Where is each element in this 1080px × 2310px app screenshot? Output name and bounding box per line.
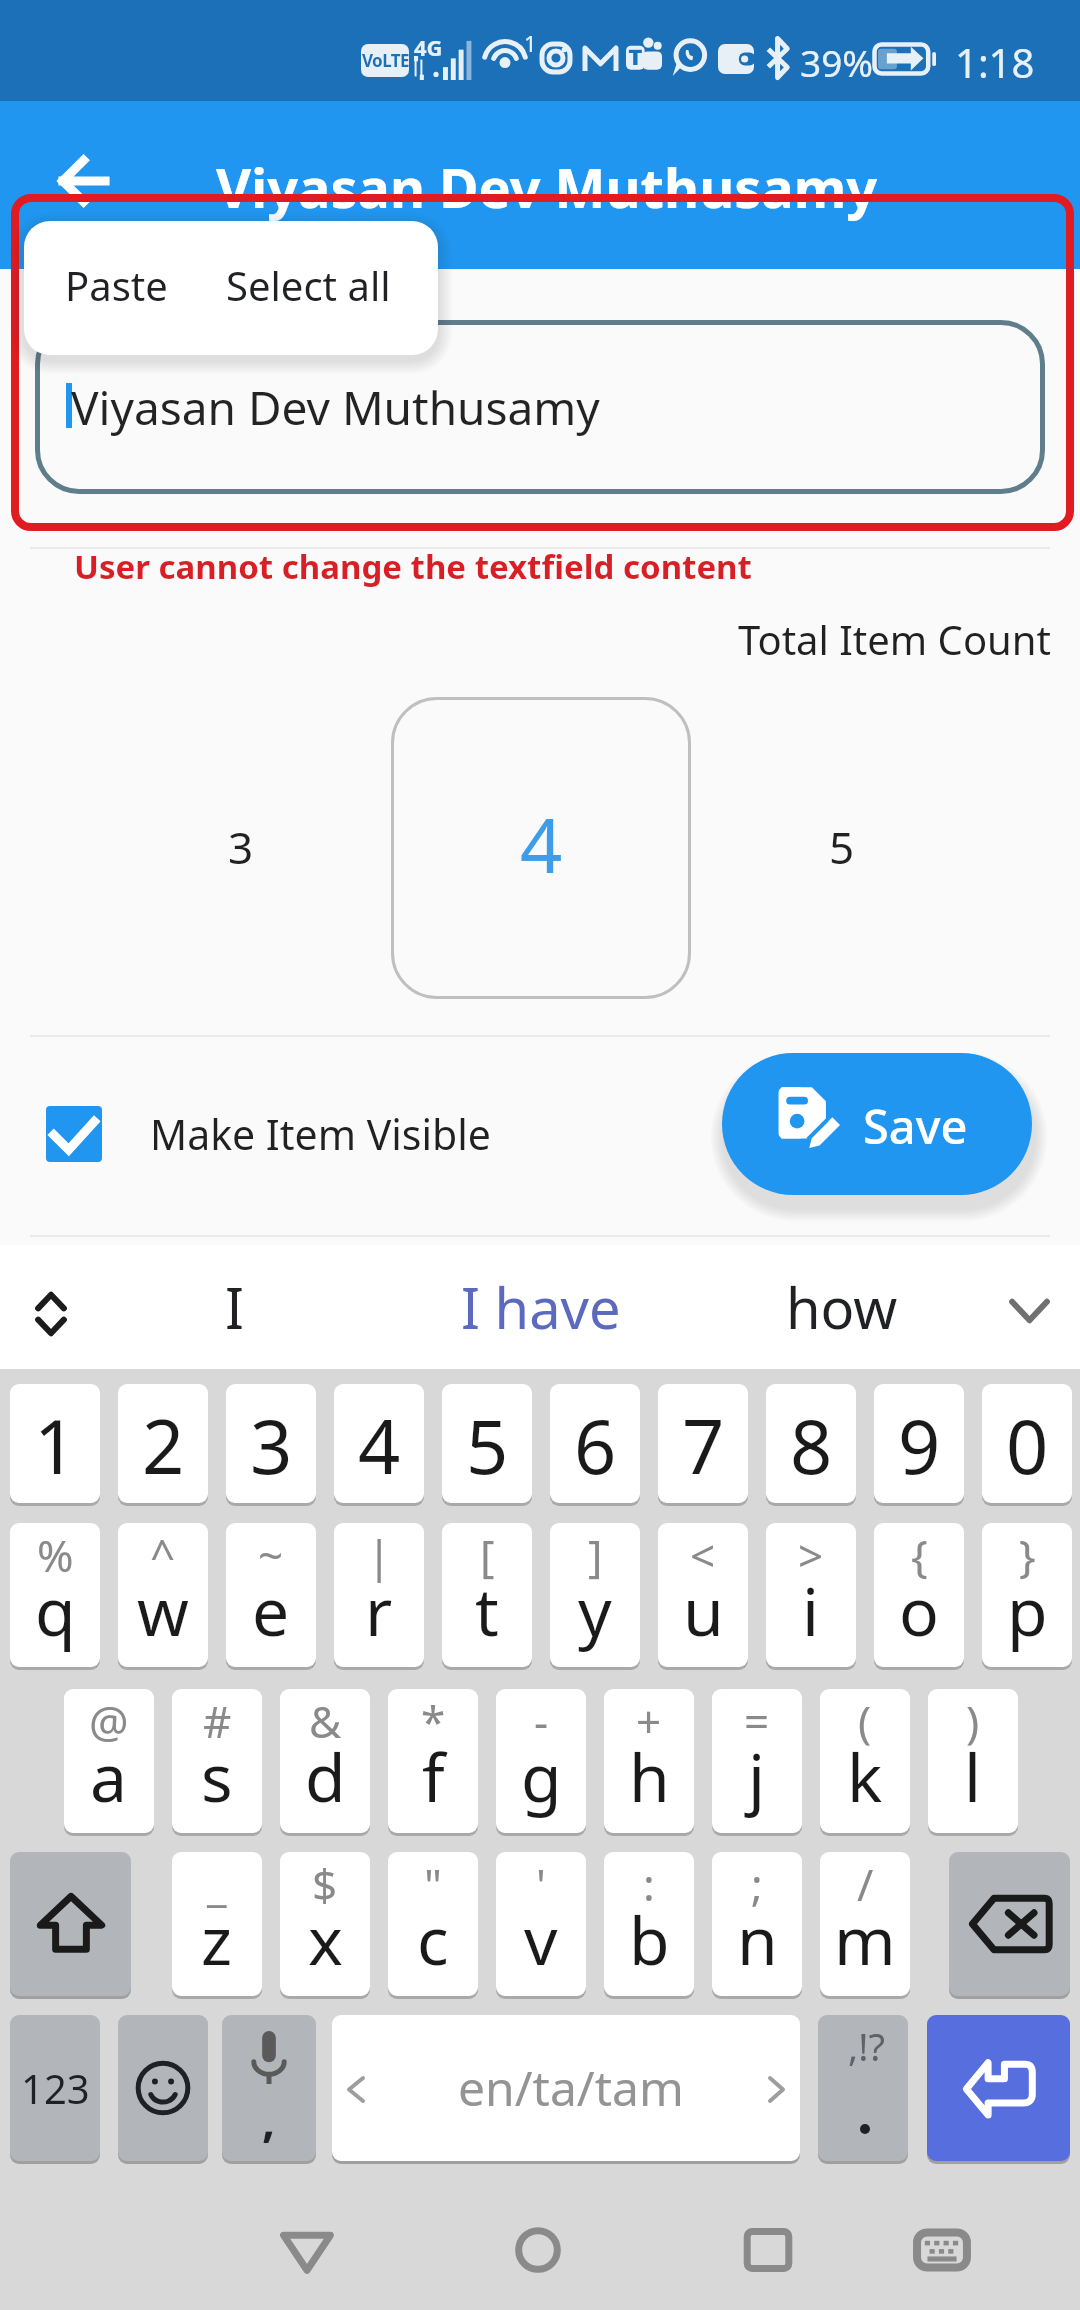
button[interactable]: / (820, 1852, 910, 1996)
button[interactable]: 2 (118, 1384, 208, 1503)
button[interactable]: Voice input (222, 2015, 316, 2161)
staticText: Total Item Count (738, 612, 1051, 666)
button[interactable]: ' (496, 1852, 586, 1996)
button[interactable]: ^ (118, 1523, 208, 1667)
staticText: " (424, 1854, 442, 1914)
staticText: Paste (65, 258, 168, 312)
button[interactable]: 0 (982, 1384, 1072, 1503)
button[interactable]: Select all (203, 221, 414, 355)
button[interactable]: $ (280, 1852, 370, 1996)
button[interactable]: 5 (442, 1384, 532, 1503)
staticText: w (137, 1565, 189, 1655)
staticText: ( (858, 1691, 872, 1751)
button[interactable]: Expand suggestions (26, 1289, 76, 1339)
staticText: I have (461, 1269, 621, 1345)
button[interactable]: 8 (766, 1384, 856, 1503)
staticText: _ (207, 1854, 227, 1914)
staticText: Make Item Visible (150, 1106, 491, 1162)
button[interactable]: 3 (226, 1384, 316, 1503)
staticText: r (365, 1565, 393, 1655)
staticText: ~ (258, 1525, 284, 1585)
button[interactable]: = (712, 1689, 802, 1833)
button[interactable]: Hide suggestions (1004, 1286, 1054, 1336)
button[interactable]: _ (172, 1852, 262, 1996)
button[interactable]: Paste (45, 221, 188, 355)
button[interactable]: Recents (742, 2227, 794, 2273)
staticText: User cannot change the textfield content (74, 544, 752, 589)
button[interactable]: | (334, 1523, 424, 1667)
button[interactable]: 123 (10, 2015, 100, 2161)
staticText: en/ta/tam (458, 2055, 684, 2120)
staticText: # (203, 1691, 232, 1751)
staticText: 2 (142, 1395, 185, 1496)
button[interactable]: Backspace (949, 1852, 1070, 1996)
staticText: b (629, 1894, 670, 1984)
button[interactable]: Emoji (118, 2015, 208, 2161)
staticText: 0 (1006, 1395, 1049, 1496)
staticText: d (305, 1731, 346, 1821)
button[interactable]: Back (62, 159, 106, 203)
button[interactable]: Hide keyboard (916, 2227, 968, 2273)
button[interactable]: ) (928, 1689, 1018, 1833)
staticText: u (683, 1565, 724, 1655)
staticText: ] (588, 1525, 603, 1585)
staticText: how (786, 1269, 898, 1345)
button[interactable]: - (496, 1689, 586, 1833)
button[interactable]: 1 (10, 1384, 100, 1503)
button[interactable]: % (10, 1523, 100, 1667)
staticText: 3 (250, 1395, 293, 1496)
button[interactable]: } (982, 1523, 1072, 1667)
staticText: @ (89, 1691, 129, 1751)
button[interactable]: { (874, 1523, 964, 1667)
staticText: j (748, 1731, 766, 1821)
button[interactable]: # (172, 1689, 262, 1833)
button[interactable]: 9 (874, 1384, 964, 1503)
button[interactable]: : (604, 1852, 694, 1996)
staticText: f (422, 1731, 445, 1821)
button[interactable]: [ (442, 1523, 532, 1667)
staticText: Viyasan Dev Muthusamy (71, 376, 600, 439)
staticText: 5 (829, 817, 855, 877)
button[interactable]: Back (281, 2227, 333, 2273)
button[interactable]: ( (820, 1689, 910, 1833)
staticText: 1:18 (955, 35, 1035, 89)
staticText: VoLTE (362, 49, 409, 72)
staticText: y (578, 1565, 612, 1655)
staticText: 4 (358, 1395, 401, 1496)
button[interactable]: Enter (927, 2015, 1070, 2161)
button[interactable]: ; (712, 1852, 802, 1996)
staticText: 39% (800, 37, 874, 87)
button[interactable]: Save (722, 1053, 1032, 1195)
button[interactable]: Punctuation (818, 2015, 908, 2161)
staticText: p (1007, 1565, 1048, 1655)
staticText: = (744, 1691, 770, 1751)
staticText: ; (751, 1854, 763, 1914)
button[interactable]: 6 (550, 1384, 640, 1503)
button[interactable]: Shift (10, 1852, 131, 1996)
button[interactable]: Make Item Visible (46, 1074, 491, 1194)
button[interactable]: Space (332, 2015, 800, 2161)
button[interactable]: Home (512, 2227, 564, 2273)
staticText: } (1019, 1525, 1036, 1585)
button[interactable]: & (280, 1689, 370, 1833)
button[interactable]: 7 (658, 1384, 748, 1503)
staticText: > (798, 1525, 824, 1585)
button[interactable]: ~ (226, 1523, 316, 1667)
button[interactable]: @ (64, 1689, 154, 1833)
staticText: I (225, 1269, 244, 1345)
staticText: 7 (682, 1395, 725, 1496)
staticText: g (521, 1731, 562, 1821)
button[interactable]: " (388, 1852, 478, 1996)
staticText: i (802, 1565, 820, 1655)
button[interactable]: ] (550, 1523, 640, 1667)
staticText: q (35, 1565, 76, 1655)
button[interactable]: * (388, 1689, 478, 1833)
button[interactable]: 4 (334, 1384, 424, 1503)
staticText: h (629, 1731, 670, 1821)
button[interactable]: > (766, 1523, 856, 1667)
staticText: 1 (34, 1395, 77, 1496)
staticText: & (309, 1691, 342, 1751)
button[interactable]: < (658, 1523, 748, 1667)
button[interactable]: + (604, 1689, 694, 1833)
staticText: - (534, 1691, 549, 1751)
